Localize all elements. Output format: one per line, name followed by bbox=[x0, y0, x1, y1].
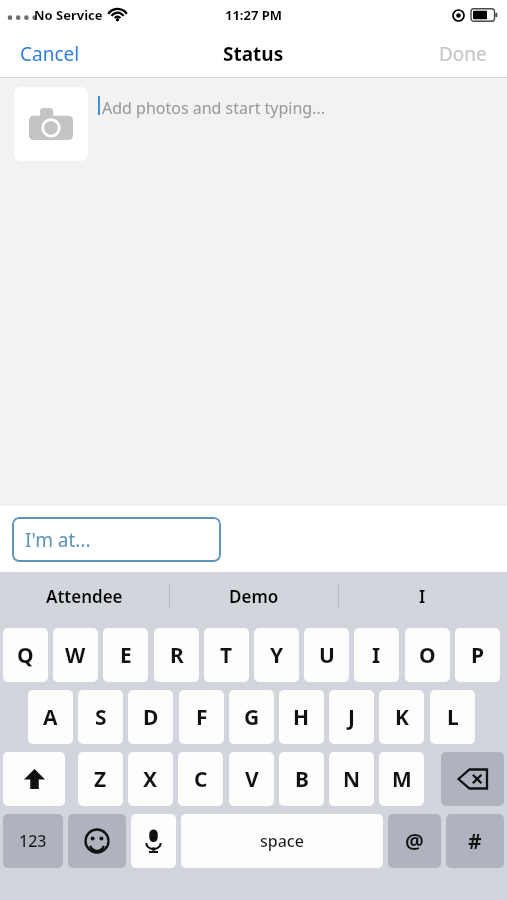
button[interactable]: G bbox=[229, 690, 274, 744]
staticText: Q bbox=[17, 641, 34, 670]
button[interactable]: T bbox=[204, 628, 249, 682]
button[interactable]: P bbox=[455, 628, 500, 682]
button[interactable]: I bbox=[338, 572, 507, 620]
staticText: 11:27 PM bbox=[225, 6, 283, 24]
staticText: G bbox=[244, 703, 260, 732]
staticText: E bbox=[120, 641, 132, 670]
staticText: S bbox=[95, 703, 107, 732]
staticText: M bbox=[392, 765, 412, 794]
button[interactable]: W bbox=[53, 628, 98, 682]
button[interactable]: At sign bbox=[388, 814, 441, 868]
button[interactable]: S bbox=[78, 690, 123, 744]
button[interactable]: Cancel bbox=[6, 32, 94, 76]
staticText: R bbox=[170, 641, 184, 670]
button[interactable]: I bbox=[354, 628, 399, 682]
staticText: I'm at... bbox=[25, 527, 91, 553]
button[interactable]: H bbox=[279, 690, 324, 744]
button[interactable]: R bbox=[154, 628, 199, 682]
staticText: Demo bbox=[229, 585, 279, 608]
button[interactable]: Y bbox=[254, 628, 299, 682]
staticText: I bbox=[419, 585, 426, 608]
button[interactable]: Dictate bbox=[131, 814, 176, 868]
staticText: # bbox=[468, 827, 482, 856]
staticText: V bbox=[245, 765, 259, 794]
staticText: I bbox=[372, 641, 381, 670]
button[interactable]: Add photo bbox=[14, 87, 88, 161]
button[interactable]: K bbox=[379, 690, 424, 744]
staticText: U bbox=[319, 641, 335, 670]
staticText: X bbox=[143, 765, 158, 794]
button[interactable]: Shift bbox=[3, 752, 65, 806]
button[interactable]: O bbox=[405, 628, 450, 682]
staticText: Cancel bbox=[20, 41, 80, 67]
button[interactable]: Z bbox=[78, 752, 123, 806]
button[interactable]: Hashtag bbox=[446, 814, 504, 868]
staticText: A bbox=[43, 703, 58, 732]
staticText: B bbox=[295, 765, 309, 794]
staticText: D bbox=[143, 703, 159, 732]
staticText: J bbox=[348, 703, 355, 732]
button[interactable]: D bbox=[128, 690, 173, 744]
staticText: Attendee bbox=[46, 585, 123, 608]
button[interactable]: I'm at... bbox=[12, 517, 221, 562]
button[interactable]: E bbox=[103, 628, 148, 682]
button[interactable]: N bbox=[329, 752, 374, 806]
staticText: L bbox=[447, 703, 459, 732]
button[interactable]: U bbox=[304, 628, 349, 682]
staticText: C bbox=[194, 765, 208, 794]
staticText: N bbox=[343, 765, 361, 794]
staticText: H bbox=[293, 703, 310, 732]
staticText: T bbox=[220, 641, 233, 670]
button[interactable]: F bbox=[179, 690, 224, 744]
button[interactable]: Emoji bbox=[68, 814, 126, 868]
staticText: O bbox=[419, 641, 436, 670]
button[interactable]: M bbox=[379, 752, 424, 806]
staticText: 123 bbox=[19, 830, 47, 852]
button[interactable]: V bbox=[229, 752, 274, 806]
staticText: No Service bbox=[34, 6, 103, 24]
staticText: P bbox=[471, 641, 485, 670]
button[interactable]: L bbox=[430, 690, 475, 744]
button[interactable]: Demo bbox=[169, 572, 338, 620]
button[interactable]: Attendee bbox=[0, 572, 169, 620]
staticText: Add photos and start typing... bbox=[102, 97, 326, 119]
button[interactable]: X bbox=[128, 752, 173, 806]
button[interactable]: J bbox=[329, 690, 374, 744]
button[interactable]: C bbox=[178, 752, 223, 806]
staticText: Status bbox=[223, 41, 284, 67]
staticText: K bbox=[395, 703, 409, 732]
button[interactable]: space bbox=[181, 814, 383, 868]
staticText: space bbox=[260, 830, 304, 852]
button[interactable]: Delete bbox=[441, 752, 504, 806]
button[interactable]: Q bbox=[3, 628, 48, 682]
staticText: Y bbox=[270, 641, 284, 670]
button[interactable]: 123 bbox=[3, 814, 63, 868]
staticText: W bbox=[65, 641, 86, 670]
staticText: @ bbox=[405, 827, 424, 856]
button[interactable]: Done bbox=[425, 32, 501, 76]
staticText: Done bbox=[439, 41, 487, 67]
staticText: F bbox=[196, 703, 208, 732]
button[interactable]: A bbox=[28, 690, 73, 744]
button[interactable]: B bbox=[279, 752, 324, 806]
staticText: Z bbox=[94, 765, 107, 794]
